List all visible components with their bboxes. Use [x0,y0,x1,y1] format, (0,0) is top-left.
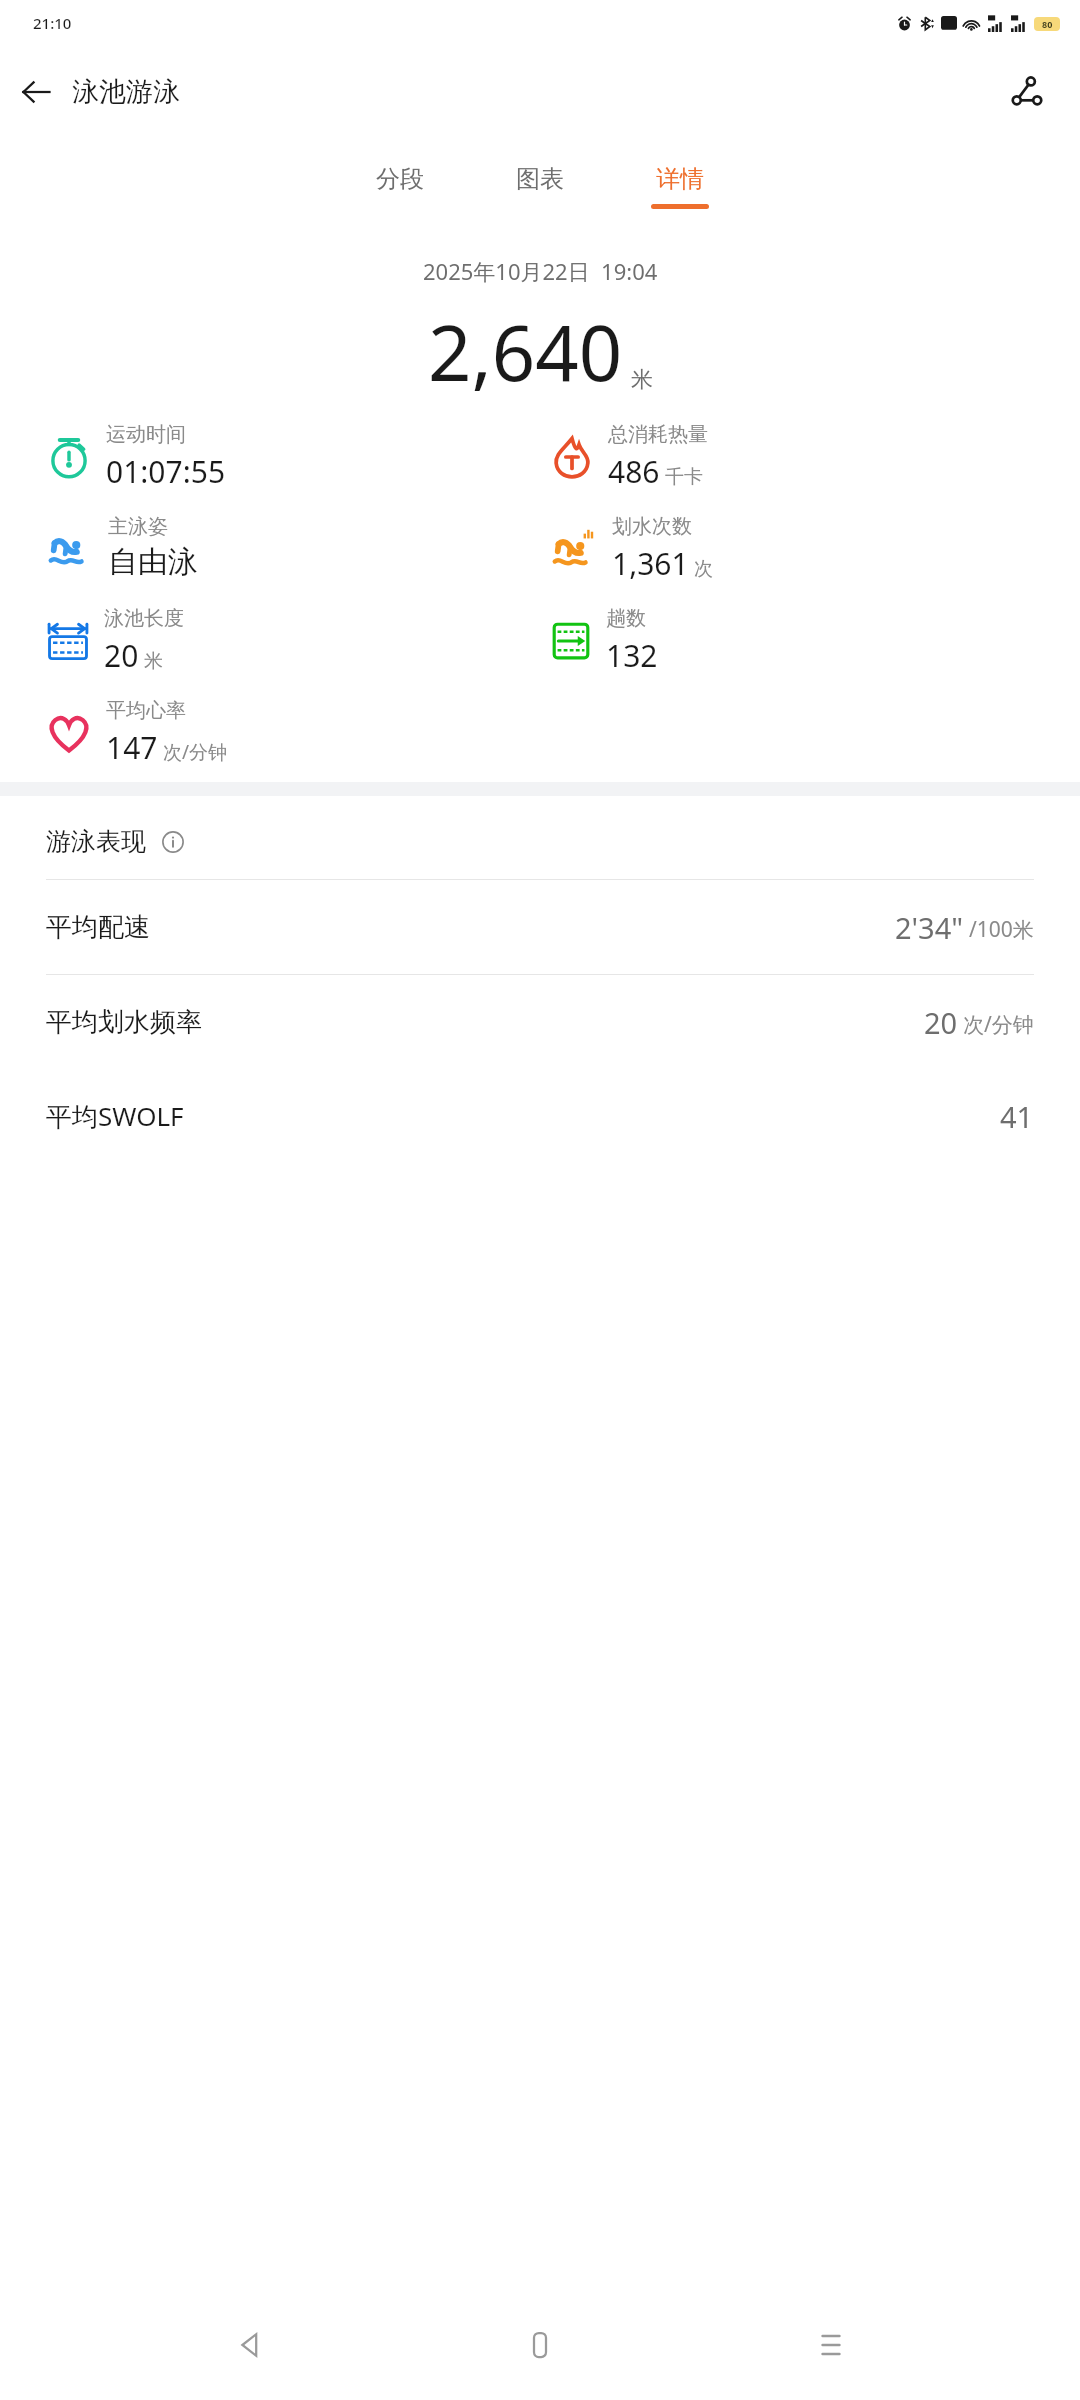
staticText: 2025年10月22日 19:04 [423,256,658,286]
staticText: 20 [104,635,139,676]
staticText: 米 [144,649,163,673]
staticText: 21:10 [33,13,72,33]
staticText: 图表 [516,164,564,194]
staticText: 泳池长度 [104,606,184,631]
button[interactable]: 说明 [158,827,188,857]
staticText: 分段 [376,164,424,194]
staticText: 平均划水频率 [46,1006,202,1039]
staticText: 1,361 [612,543,689,584]
staticText: 平均心率 [106,698,186,723]
button[interactable]: 主页 [498,2303,582,2387]
staticText: 划水次数 [612,514,692,539]
button[interactable]: 运动时间 [46,422,226,492]
staticText: 2'34" [895,908,964,947]
staticText: 运动时间 [106,422,186,447]
staticText: /100米 [969,915,1034,944]
staticText: 20 [924,1003,958,1042]
button[interactable]: 主泳姿 [46,514,198,581]
button[interactable]: 分享 [996,61,1058,123]
button[interactable]: 图表 [501,158,579,215]
staticText: 41 [1000,1097,1034,1136]
button[interactable]: 泳池长度 [46,606,184,676]
staticText: 次/分钟 [163,739,228,765]
button[interactable]: 平均SWOLF [0,1069,1080,1163]
button[interactable]: 平均心率 [46,698,228,768]
staticText: 2,640 [428,300,623,404]
staticText: 趟数 [606,606,646,631]
staticText: 平均配速 [46,911,150,944]
staticText: 详情 [656,164,704,194]
button[interactable]: 详情 [641,158,719,215]
button[interactable]: 最近任务 [789,2303,873,2387]
staticText: 132 [606,635,658,676]
button[interactable]: 返回 [207,2303,291,2387]
staticText: 游泳表现 [46,826,146,857]
staticText: 自由泳 [108,543,198,581]
staticText: 01:07:55 [106,451,226,492]
button[interactable]: 划水次数 [550,514,713,584]
staticText: 次/分钟 [963,1010,1034,1039]
button[interactable]: 分段 [361,158,439,215]
button[interactable]: 总消耗热量 [550,422,708,492]
button[interactable]: 平均划水频率 [0,974,1080,1069]
button[interactable]: 平均配速 [0,879,1080,974]
button[interactable]: 返回 [0,56,72,128]
staticText: 次 [694,557,713,581]
staticText: 486 [608,451,660,492]
staticText: 80 [1042,18,1053,30]
staticText: 平均SWOLF [46,1098,184,1134]
staticText: 主泳姿 [108,514,168,539]
staticText: 总消耗热量 [608,422,708,447]
staticText: 泳池游泳 [72,75,180,109]
staticText: 千卡 [665,465,703,489]
staticText: 147 [106,727,158,768]
staticText: 米 [631,366,653,394]
button[interactable]: 趟数 [550,606,658,676]
